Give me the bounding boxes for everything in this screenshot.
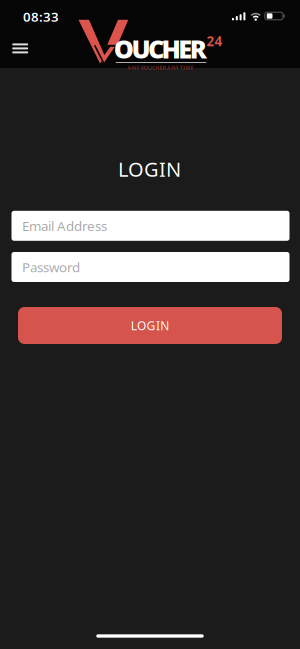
button[interactable]: Password [11, 252, 289, 282]
staticText: LOGIN [131, 317, 169, 333]
staticText: 24 [206, 32, 222, 50]
staticText: LOGIN [118, 156, 181, 182]
staticText: Email Address [22, 217, 107, 235]
staticText: Password [22, 258, 80, 276]
staticText: OUCHER [114, 32, 207, 65]
button[interactable]: LOGIN [18, 307, 282, 344]
staticText: 08:33 [23, 8, 59, 25]
button[interactable] [8, 38, 32, 58]
staticText: ANY VOUCHER ANY TIME [128, 64, 193, 71]
button[interactable]: Email Address [11, 211, 289, 241]
